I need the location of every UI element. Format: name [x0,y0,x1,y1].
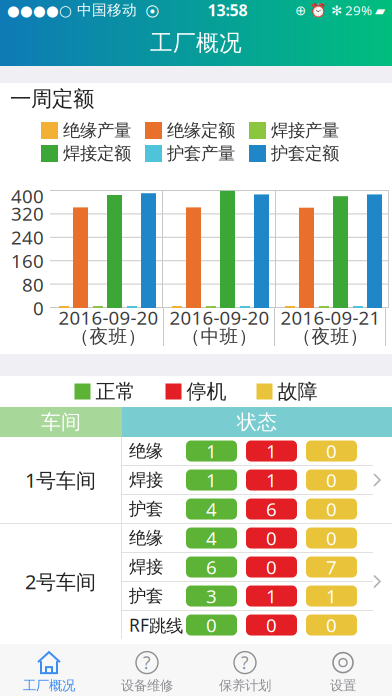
staticText: 160 [11,248,44,273]
staticText: 工厂概况 [23,677,75,694]
staticText: （夜班） [292,325,368,348]
staticText: 3 [206,583,217,609]
button[interactable]: ? [98,646,196,694]
staticText: 焊接定额 [63,143,131,164]
staticText: 1 [266,438,277,464]
staticText: 护套 [129,498,163,520]
staticText: ? [241,651,249,674]
staticText: 0 [326,612,337,638]
staticText: 13:58 [207,0,247,21]
staticText: 焊接产量 [271,120,339,141]
button[interactable]: 2号车间 [0,524,392,639]
staticText: 0 [326,496,337,522]
staticText: 1 [206,467,217,493]
staticText: 绝缘产量 [63,120,131,141]
staticText: 护套 [129,585,163,607]
staticText: 故障 [277,379,317,404]
staticText: 1 [326,583,337,609]
staticText: 1号车间 [25,466,96,494]
staticText: 0 [326,467,337,493]
staticText: 1 [206,438,217,464]
staticText: （夜班） [70,325,146,348]
staticText: 0 [326,525,337,551]
staticText: 一周定额 [10,86,94,112]
staticText: 0 [266,525,277,551]
staticText: 1 [266,467,277,493]
staticText: ●●●●○ 中国移动 ⦿ [7,1,160,19]
staticText: 2016-09-21 [280,305,380,330]
button[interactable]: ? [196,646,294,694]
staticText: 4 [206,496,217,522]
staticText: 护套定额 [271,143,339,164]
staticText: 0 [206,612,217,638]
staticText: 0 [266,554,277,580]
staticText: 设备维修 [121,677,173,694]
staticText: ? [143,651,151,674]
staticText: 6 [266,496,277,522]
staticText: 2016-09-20 [169,305,269,330]
button[interactable]: 1号车间 [0,437,392,523]
staticText: 保养计划 [219,677,271,694]
button[interactable]: 设置 [294,646,392,694]
staticText: 2016-09-20 [58,305,158,330]
staticText: 400 [11,183,44,209]
staticText: 焊接 [129,469,163,491]
staticText: 0 [266,612,277,638]
staticText: 车间 [41,409,81,435]
staticText: 1 [266,583,277,609]
staticText: 正常 [95,379,135,404]
staticText: 工厂概况 [150,29,242,57]
staticText: 焊接 [129,556,163,578]
staticText: 7 [326,554,337,580]
staticText: ⊕ ⏰ ✻ 29% ▰ [295,1,385,19]
staticText: RF跳线 [129,613,183,637]
staticText: 0 [326,438,337,464]
staticText: 4 [206,525,217,551]
staticText: 绝缘 [129,527,163,549]
staticText: （中班） [181,325,257,348]
staticText: 320 [11,201,44,226]
staticText: 绝缘 [129,440,163,462]
staticText: 80 [22,272,44,297]
staticText: 状态 [237,409,277,435]
staticText: 护套产量 [167,143,235,164]
staticText: 0 [33,295,44,321]
staticText: 240 [11,224,44,250]
staticText: 2号车间 [25,568,96,595]
button[interactable]: 工厂概况 [0,646,98,694]
staticText: 设置 [330,677,356,694]
staticText: 6 [206,554,217,580]
staticText: 停机 [186,379,226,404]
staticText: 绝缘定额 [167,120,235,141]
